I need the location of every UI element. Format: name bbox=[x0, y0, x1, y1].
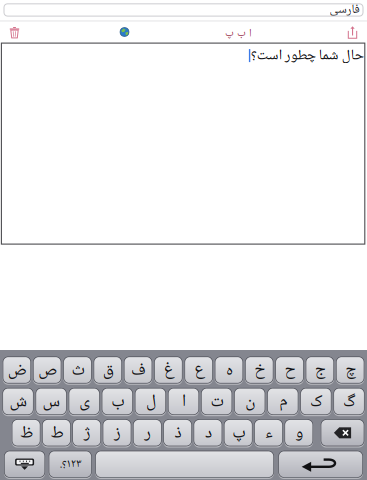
button[interactable]: د bbox=[194, 419, 222, 446]
button[interactable]: ر bbox=[133, 419, 162, 446]
button[interactable]: ۱۲۳؟. bbox=[49, 451, 92, 478]
staticText: ت bbox=[210, 390, 223, 413]
button[interactable]: ه bbox=[215, 356, 243, 383]
button[interactable]: ء bbox=[254, 419, 283, 446]
staticText: ف bbox=[130, 358, 145, 382]
staticText: ب bbox=[111, 390, 124, 413]
button[interactable]: و bbox=[284, 419, 313, 446]
staticText: م bbox=[279, 390, 287, 413]
button[interactable]: ژ bbox=[72, 419, 101, 446]
button[interactable]: ذ bbox=[163, 419, 192, 446]
button[interactable]: ی bbox=[69, 388, 100, 415]
button[interactable]: ض bbox=[3, 356, 31, 383]
button[interactable]: Hide keyboard bbox=[4, 451, 45, 478]
staticText: ن bbox=[245, 390, 255, 413]
staticText: ع bbox=[194, 358, 204, 382]
button[interactable]: Return bbox=[278, 451, 363, 478]
button[interactable]: پ bbox=[224, 419, 252, 446]
button[interactable]: ج bbox=[306, 356, 334, 383]
staticText: ز bbox=[113, 421, 120, 445]
staticText: ه bbox=[225, 358, 232, 382]
button[interactable]: ا ب پ bbox=[210, 23, 266, 44]
staticText: چ bbox=[345, 358, 356, 382]
staticText: ء bbox=[264, 421, 272, 445]
staticText: ط bbox=[50, 421, 63, 445]
staticText: ج bbox=[314, 358, 325, 382]
staticText: ا bbox=[181, 390, 185, 413]
staticText: س bbox=[42, 390, 60, 413]
staticText: ث bbox=[71, 358, 84, 382]
staticText: ح bbox=[284, 358, 295, 382]
button[interactable]: ح bbox=[275, 356, 304, 383]
button[interactable]: Space bbox=[95, 451, 274, 478]
staticText: گ bbox=[342, 390, 355, 413]
staticText: ظ bbox=[20, 421, 33, 445]
button[interactable]: Delete bbox=[321, 419, 364, 446]
button[interactable]: Clear text bbox=[0, 22, 31, 43]
button[interactable]: ط bbox=[42, 419, 71, 446]
staticText: ژ bbox=[83, 421, 90, 445]
button[interactable]: غ bbox=[154, 356, 182, 383]
button[interactable]: ص bbox=[33, 356, 61, 383]
button[interactable]: ب bbox=[102, 388, 133, 415]
staticText: ذ bbox=[174, 421, 181, 445]
button[interactable]: ش bbox=[2, 388, 33, 415]
button[interactable]: ث bbox=[63, 356, 92, 383]
button[interactable]: ع bbox=[184, 356, 213, 383]
staticText: خ bbox=[254, 358, 265, 382]
button[interactable]: س bbox=[35, 388, 67, 415]
staticText: ۱۲۳؟. bbox=[59, 456, 81, 472]
button[interactable]: ل bbox=[135, 388, 166, 415]
button[interactable]: ق bbox=[94, 356, 122, 383]
staticText: غ bbox=[163, 358, 173, 382]
staticText: ص bbox=[38, 358, 57, 382]
button[interactable]: ا bbox=[168, 388, 199, 415]
staticText: ر bbox=[144, 421, 151, 445]
staticText: ا ب پ bbox=[224, 26, 251, 41]
button[interactable]: چ bbox=[336, 356, 364, 383]
staticText: ش bbox=[9, 390, 27, 413]
button[interactable]: م bbox=[267, 388, 298, 415]
staticText: فارسی bbox=[329, 1, 359, 19]
button[interactable]: ن bbox=[234, 388, 265, 415]
button[interactable]: ف bbox=[124, 356, 152, 383]
button[interactable]: ز bbox=[103, 419, 131, 446]
button[interactable]: Share bbox=[335, 22, 367, 43]
staticText: د bbox=[204, 421, 211, 445]
button[interactable]: ت bbox=[201, 388, 232, 415]
button[interactable]: خ bbox=[245, 356, 273, 383]
button[interactable]: Switch language bbox=[109, 21, 139, 42]
staticText: ل bbox=[145, 390, 155, 413]
button[interactable]: گ bbox=[333, 388, 365, 415]
staticText: ض bbox=[7, 358, 26, 382]
staticText: و bbox=[295, 421, 303, 445]
staticText: حال شما چطور است؟ bbox=[250, 46, 363, 66]
staticText: ی bbox=[79, 390, 90, 413]
staticText: ک bbox=[309, 390, 322, 413]
staticText: ق bbox=[102, 358, 113, 382]
button[interactable]: ظ bbox=[12, 419, 40, 446]
button[interactable]: ک bbox=[300, 388, 331, 415]
staticText: پ bbox=[232, 421, 245, 445]
